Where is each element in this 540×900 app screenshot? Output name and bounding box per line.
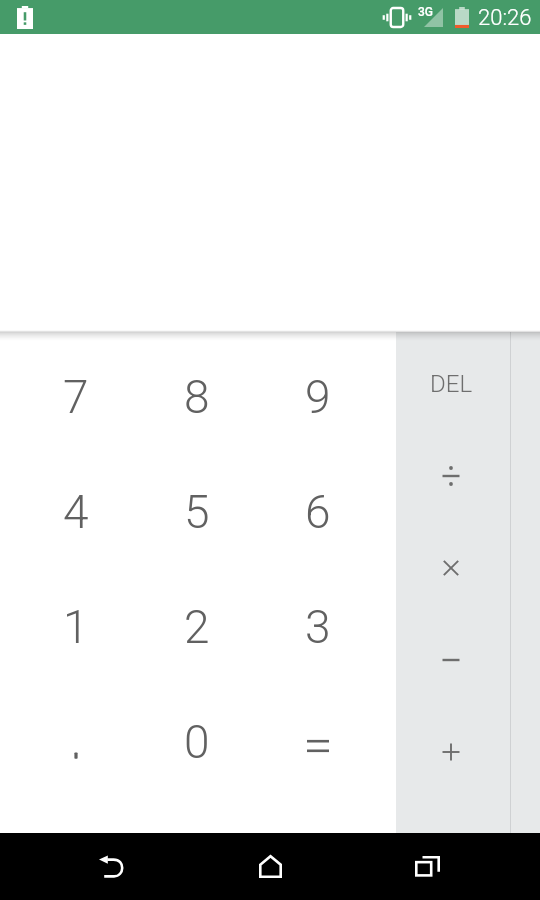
button[interactable]: 5 [136, 454, 257, 569]
staticText: 9 [305, 370, 331, 424]
staticText: 8 [184, 370, 210, 424]
button[interactable]: Multiply [396, 521, 506, 613]
button[interactable]: 8 [136, 340, 257, 454]
staticText: 0 [184, 715, 210, 769]
staticText: 2 [184, 600, 210, 654]
button[interactable]: 2 [136, 569, 257, 684]
button[interactable]: Add [396, 705, 506, 797]
staticText: 1 [63, 600, 89, 654]
button[interactable]: 1 [15, 569, 136, 684]
button[interactable]: 6 [257, 454, 378, 569]
staticText: 7 [63, 370, 89, 424]
button[interactable]: Divide [396, 429, 506, 521]
staticText: DEL [430, 370, 473, 398]
staticText: 20:26 [478, 5, 532, 31]
button[interactable]: Subtract [396, 613, 506, 705]
button[interactable]: 7 [15, 340, 136, 454]
staticText: 3G [418, 5, 433, 19]
button[interactable]: DEL [396, 337, 506, 429]
button[interactable]: Recent apps [367, 833, 487, 900]
button[interactable]: 4 [15, 454, 136, 569]
staticText: 5 [184, 485, 210, 539]
staticText: 6 [305, 485, 331, 539]
button[interactable]: 3 [257, 569, 378, 684]
button[interactable]: 0 [136, 684, 257, 799]
button[interactable]: Equals [257, 684, 378, 799]
other: Battery alert [17, 6, 33, 29]
staticText: 4 [63, 485, 89, 539]
button[interactable]: 9 [257, 340, 378, 454]
staticText: 3 [305, 600, 331, 654]
button[interactable]: Decimal point [15, 684, 136, 799]
button[interactable]: Back [52, 833, 172, 900]
button[interactable]: Home [210, 833, 330, 900]
